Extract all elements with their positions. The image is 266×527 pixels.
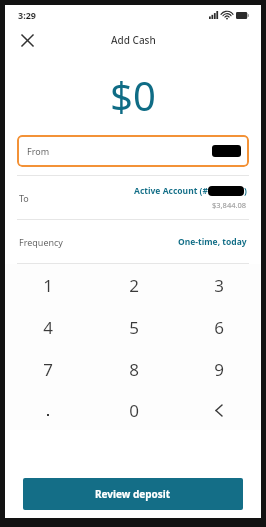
button[interactable]: From [17,135,249,167]
staticText: Frequency [19,236,63,248]
button[interactable]: 3 [176,264,261,306]
staticText: $3,844.08 [212,200,247,210]
button[interactable]: Review deposit [23,478,243,510]
button[interactable]: To [5,176,261,219]
button[interactable]: 5 [91,306,176,348]
button[interactable] [5,390,91,430]
staticText: Active Account (# [134,185,208,197]
staticText: From [27,145,50,157]
staticText: 5 [129,316,139,339]
staticText: 2 [129,274,139,297]
button[interactable]: Backspace [176,390,261,430]
staticText: 3 [214,274,224,297]
staticText: Review deposit [95,487,171,501]
button[interactable]: 4 [5,306,91,348]
staticText: $0 [110,68,156,122]
staticText: 8 [129,358,139,381]
staticText: 7 [43,358,53,381]
staticText: 1 [43,274,53,297]
button[interactable]: Frequency [5,220,261,263]
button[interactable]: 2 [91,264,176,306]
button[interactable]: 0 [91,390,176,430]
button[interactable]: 9 [176,348,261,390]
staticText: 4 [43,316,53,339]
staticText: One-time, today [178,236,247,248]
staticText: 3:29 [18,9,36,21]
staticText: To [19,192,29,204]
button[interactable]: 8 [91,348,176,390]
staticText: 0 [129,399,139,422]
button[interactable]: 7 [5,348,91,390]
button[interactable]: Close [14,27,40,53]
staticText: 6 [214,316,224,339]
staticText: Add Cash [111,33,156,47]
staticText: ) [244,185,247,197]
button[interactable]: 6 [176,306,261,348]
button[interactable]: 1 [5,264,91,306]
staticText: 9 [214,358,224,381]
